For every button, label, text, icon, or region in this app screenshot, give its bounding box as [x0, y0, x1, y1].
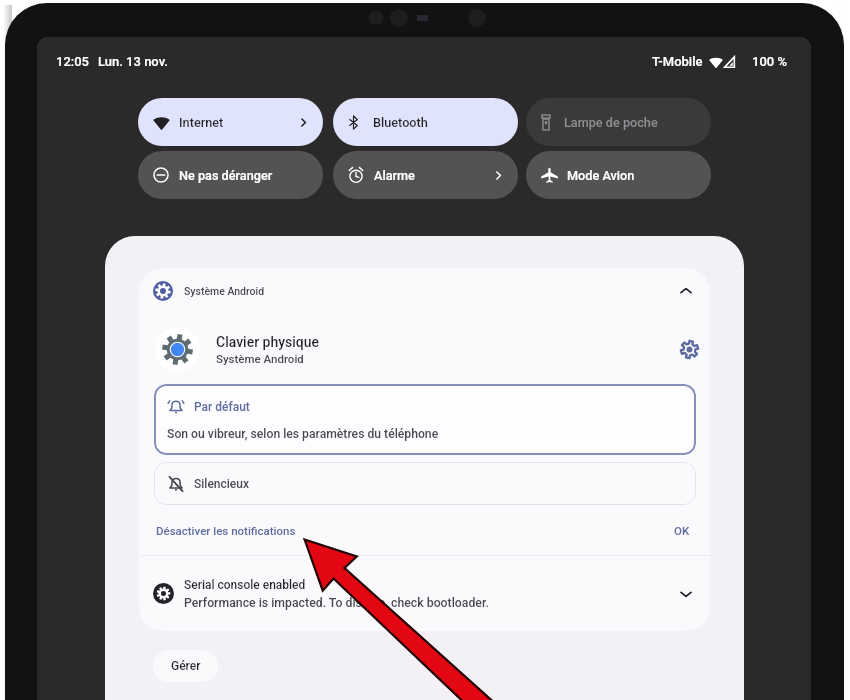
staticText: Lun. 13 nov. [98, 54, 168, 69]
staticText: Son ou vibreur, selon les paramètres du … [167, 427, 439, 441]
staticText: Lampe de poche [564, 115, 658, 130]
staticText: Système Android [216, 352, 304, 365]
button[interactable]: Ne pas déranger [138, 151, 323, 199]
staticText: Performance is impacted. To disable, che… [184, 596, 489, 610]
button[interactable]: Réduire [670, 275, 702, 307]
button[interactable]: OK [674, 524, 690, 537]
button[interactable]: Paramètres [673, 333, 705, 365]
button[interactable]: Par défaut [154, 384, 696, 455]
button[interactable]: Gérer [153, 650, 218, 682]
staticText: Internet [179, 115, 224, 130]
staticText: T-Mobile [652, 54, 703, 69]
staticText: OK [674, 524, 690, 537]
staticText: Ne pas déranger [179, 168, 273, 183]
staticText: Bluetooth [373, 115, 428, 130]
staticText: 12:05 [56, 54, 89, 69]
button[interactable]: Lampe de poche [526, 98, 711, 146]
staticText: Alarme [374, 168, 415, 183]
staticText: Serial console enabled [184, 578, 306, 592]
button[interactable]: Développer [670, 578, 702, 610]
staticText: Gérer [171, 659, 201, 673]
staticText: Mode Avion [567, 168, 635, 183]
button[interactable]: Alarme [333, 151, 518, 199]
staticText: Système Android [184, 285, 265, 297]
button[interactable]: Internet [138, 98, 323, 146]
button[interactable]: Silencieux [154, 462, 696, 505]
staticText: Par défaut [194, 400, 250, 414]
button[interactable]: Mode Avion [526, 151, 711, 199]
button[interactable]: Désactiver les notifications [156, 524, 296, 537]
staticText: Clavier physique [216, 334, 320, 350]
staticText: Silencieux [194, 477, 249, 491]
staticText: Désactiver les notifications [156, 524, 296, 537]
button[interactable]: Bluetooth [333, 98, 518, 146]
staticText: 100 % [752, 54, 787, 69]
